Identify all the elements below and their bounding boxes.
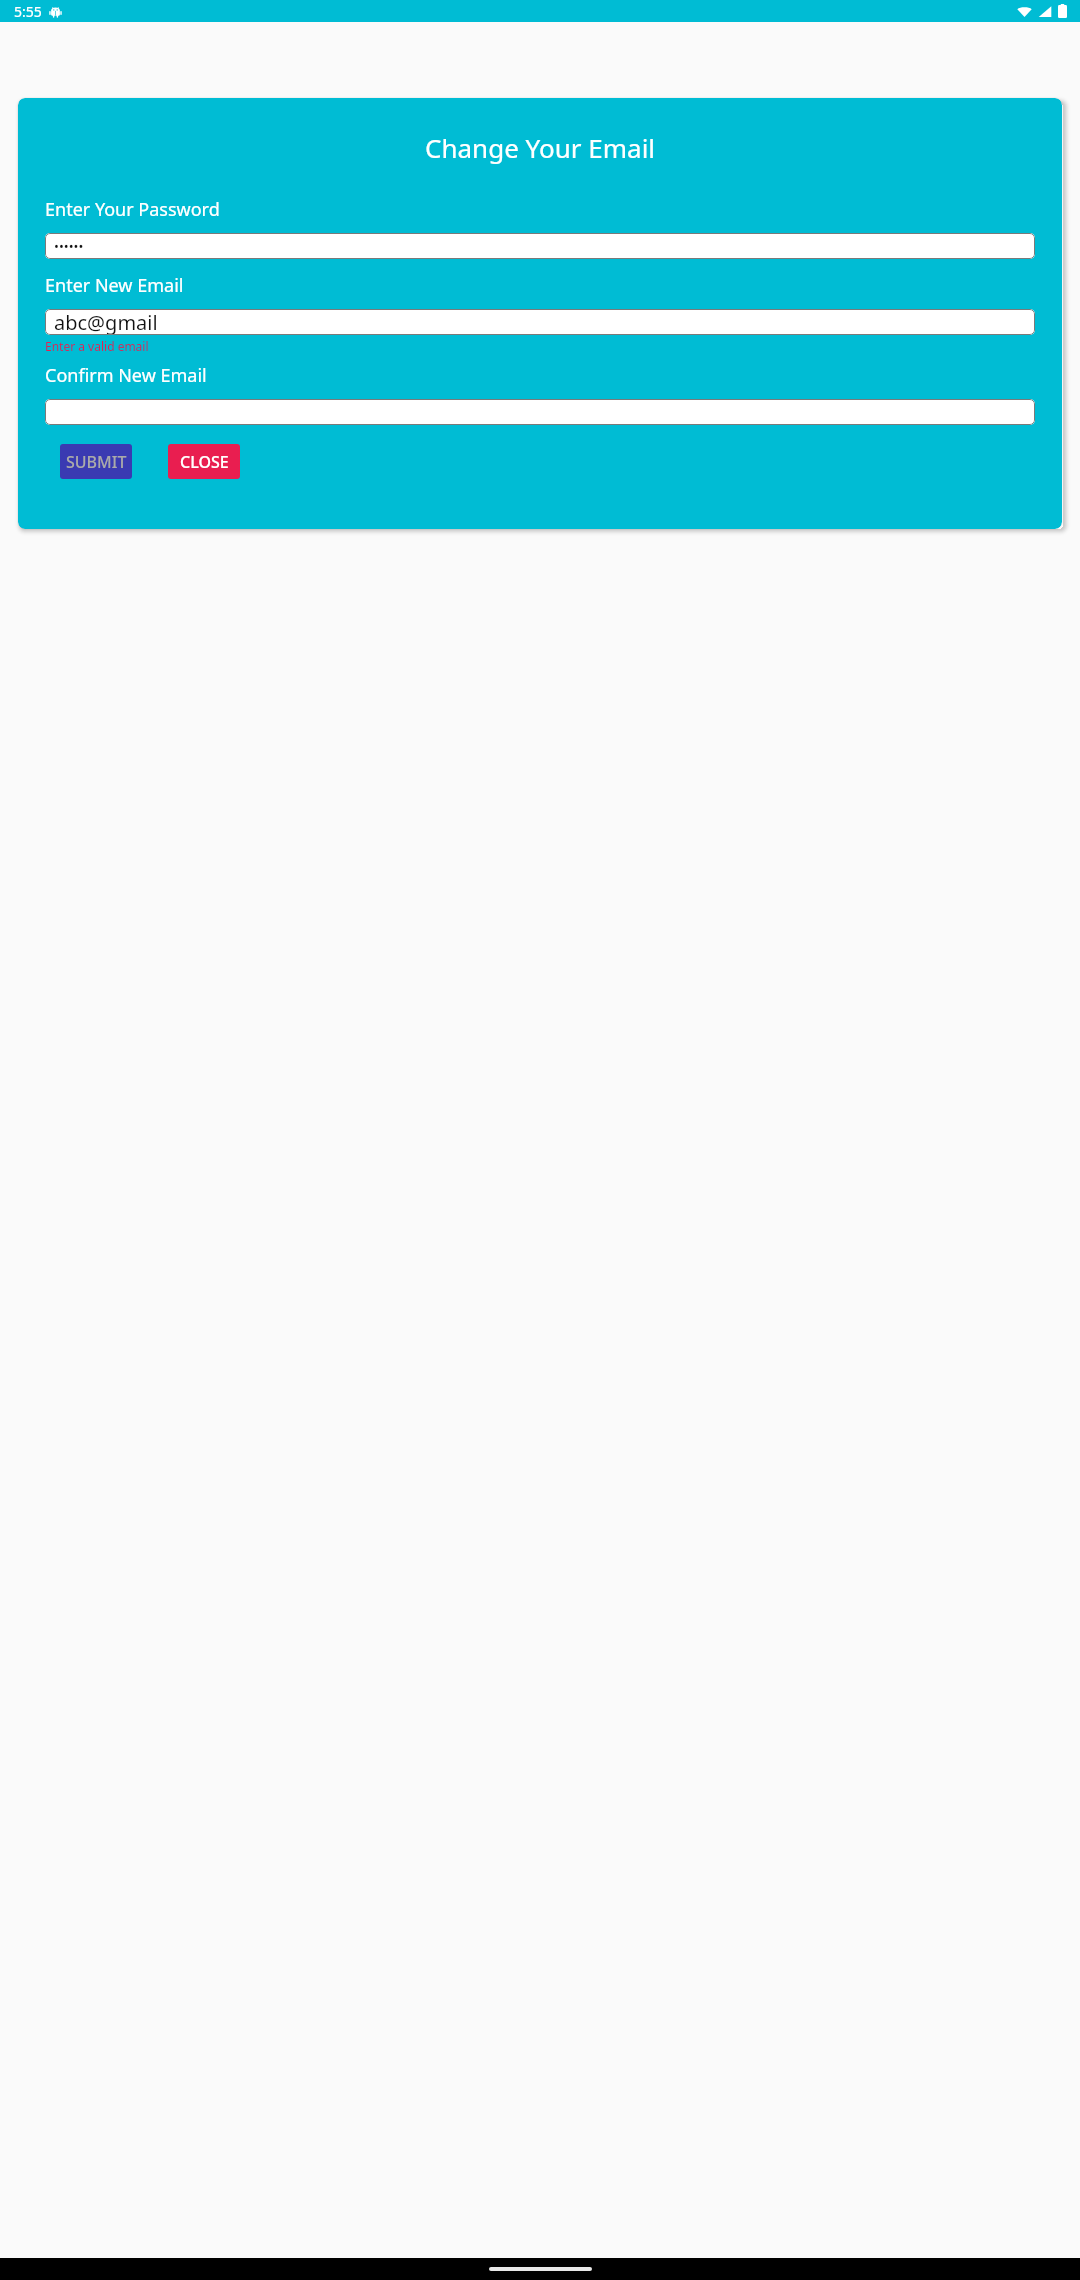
staticText: Enter a valid email	[45, 338, 149, 354]
button[interactable]: ••••••	[45, 233, 1035, 259]
staticText: Confirm New Email	[45, 363, 207, 388]
staticText: Change Your Email	[425, 130, 656, 165]
staticText: ••••••	[54, 237, 84, 255]
button[interactable]	[45, 399, 1035, 425]
staticText: CLOSE	[180, 451, 229, 473]
staticText: SUBMIT	[66, 451, 127, 473]
staticText: 5:55	[14, 2, 42, 21]
staticText: Enter Your Password	[45, 197, 220, 222]
button[interactable]: SUBMIT	[60, 444, 132, 479]
staticText: Enter New Email	[45, 273, 184, 298]
button[interactable]: abc@gmail	[45, 309, 1035, 335]
button[interactable]: CLOSE	[168, 444, 240, 479]
staticText: abc@gmail	[54, 309, 158, 335]
